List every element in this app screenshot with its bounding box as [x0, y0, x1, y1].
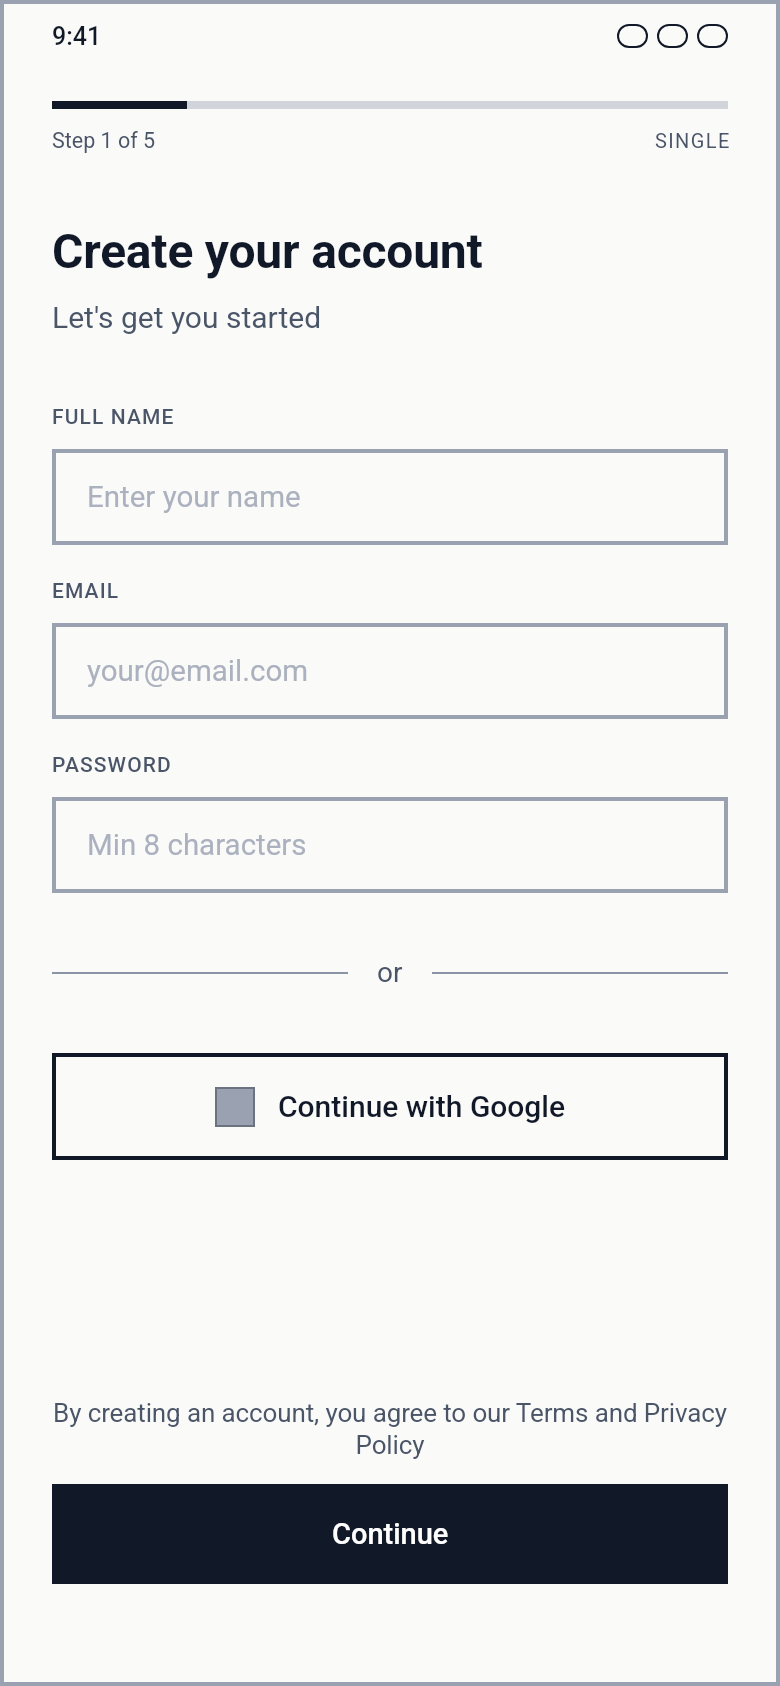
other: Google logo	[215, 1087, 255, 1127]
staticText: EMAIL	[52, 579, 120, 604]
staticText: or	[377, 956, 403, 989]
staticText: your@email.com	[87, 654, 309, 689]
staticText: By creating an account, you agree to our…	[52, 1398, 728, 1460]
staticText: Min 8 characters	[87, 828, 307, 863]
staticText: Step 1 of 5	[52, 128, 156, 153]
staticText: Continue	[332, 1517, 449, 1551]
staticText: 9:41	[52, 22, 102, 51]
button[interactable]: your@email.com	[52, 623, 728, 719]
staticText: Let's get you started	[52, 300, 322, 335]
other: Signal, Wi-Fi and battery status	[617, 24, 728, 48]
staticText: Enter your name	[87, 480, 301, 515]
staticText: FULL NAME	[52, 405, 175, 430]
staticText: Create your account	[52, 223, 483, 279]
button[interactable]: Continue	[52, 1484, 728, 1584]
staticText: SINGLE	[655, 129, 731, 152]
button[interactable]: Min 8 characters	[52, 797, 728, 893]
staticText: PASSWORD	[52, 753, 172, 778]
button[interactable]: Google logo	[52, 1053, 728, 1160]
staticText: Continue with Google	[278, 1089, 566, 1124]
button[interactable]: Enter your name	[52, 449, 728, 545]
